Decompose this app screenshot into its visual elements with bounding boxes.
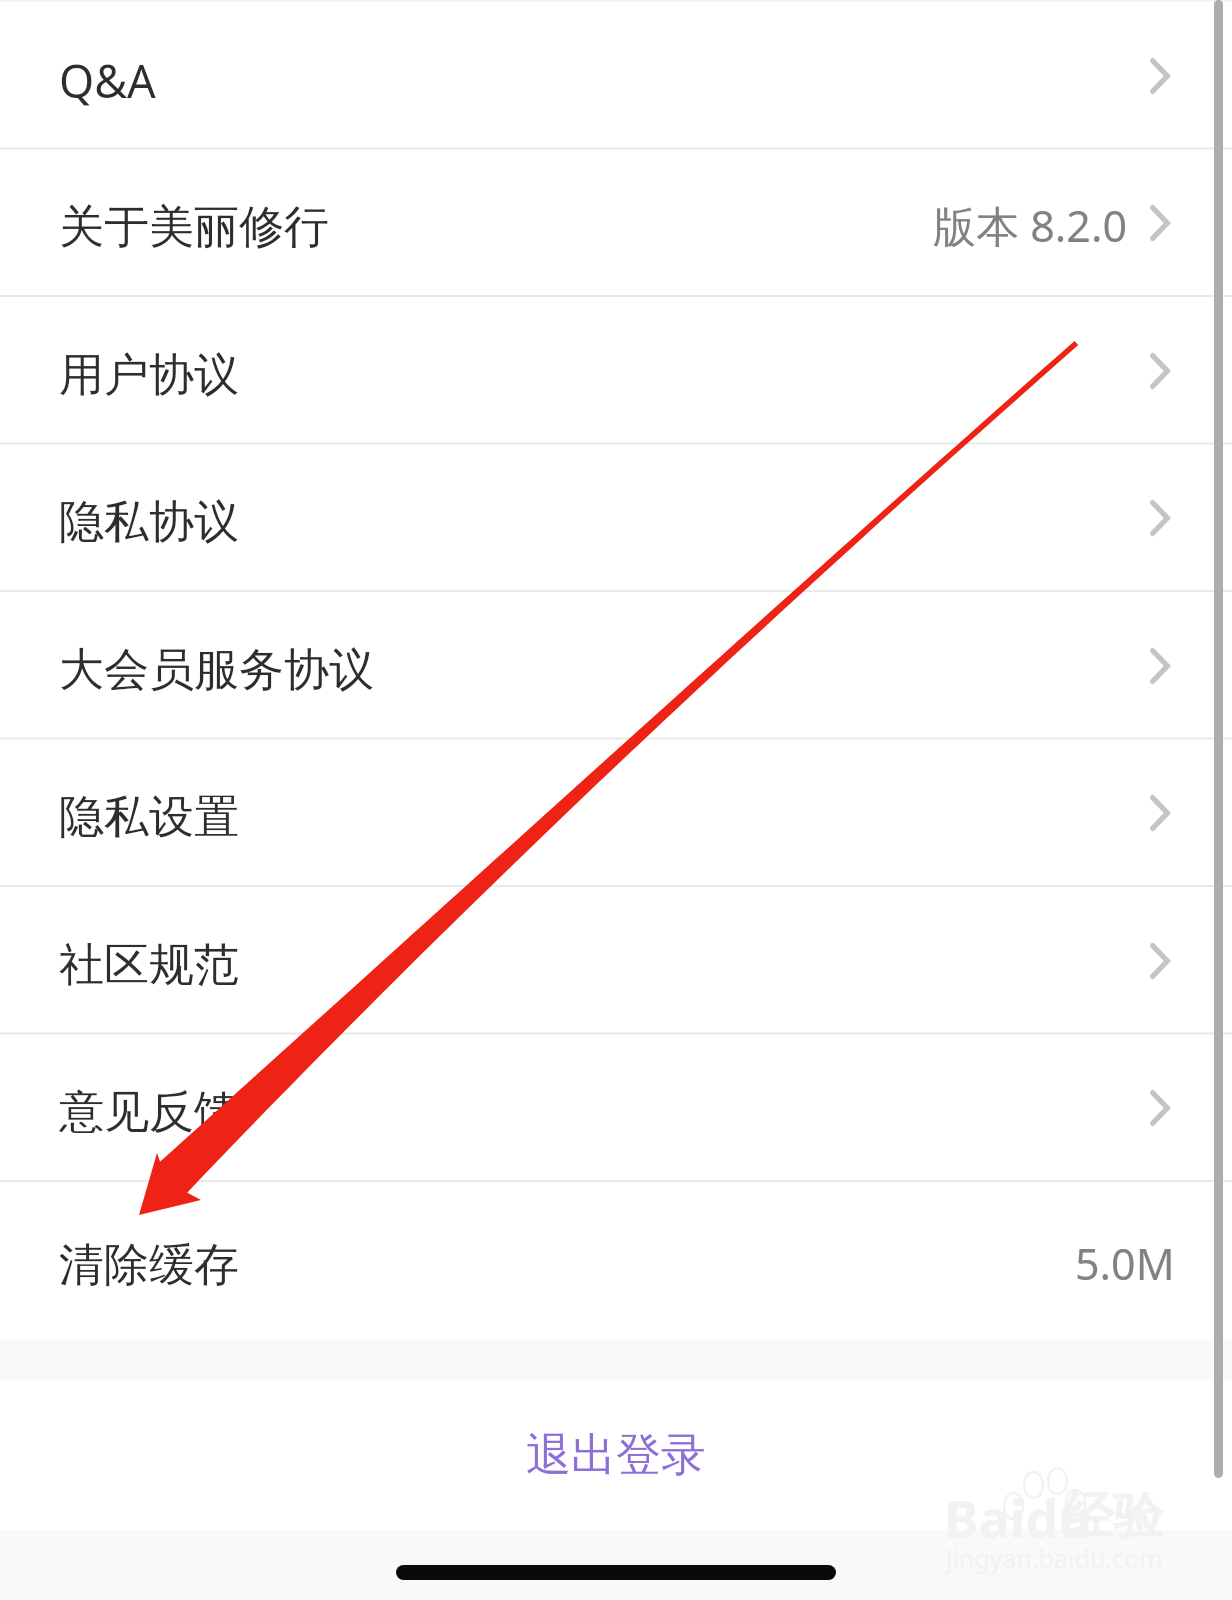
other: Open	[1150, 943, 1170, 979]
button[interactable]: 大会员服务协议	[0, 593, 1232, 739]
button[interactable]: Q&A	[0, 3, 1232, 149]
staticText: 用户协议	[59, 347, 239, 404]
button[interactable]: 社区规范	[0, 888, 1232, 1034]
staticText: Q&A	[59, 50, 156, 111]
other: Open	[1150, 648, 1170, 684]
button[interactable]: 隐私协议	[0, 445, 1232, 591]
staticText: 退出登录	[526, 1427, 706, 1484]
button[interactable]: 关于美丽修行	[0, 150, 1232, 296]
staticText: 隐私协议	[59, 494, 239, 551]
other: Open	[1150, 58, 1170, 94]
staticText: 清除缓存	[59, 1237, 239, 1294]
other: Open	[1150, 205, 1170, 241]
button[interactable]: 退出登录	[0, 1380, 1232, 1530]
button[interactable]: 隐私设置	[0, 740, 1232, 886]
staticText: 5.0M	[1075, 1234, 1175, 1293]
other: Open	[1150, 1090, 1170, 1126]
staticText: 社区规范	[59, 937, 239, 994]
other: Open	[1150, 353, 1170, 389]
other: Open	[1150, 500, 1170, 536]
staticText: 关于美丽修行	[59, 199, 329, 256]
staticText: 意见反馈	[59, 1084, 239, 1141]
other: Open	[1150, 795, 1170, 831]
staticText: 版本 8.2.0	[933, 196, 1128, 255]
button[interactable]: 意见反馈	[0, 1035, 1232, 1181]
button[interactable]: 用户协议	[0, 298, 1232, 444]
staticText: 隐私设置	[59, 789, 239, 846]
button[interactable]: 清除缓存	[0, 1183, 1232, 1340]
staticText: 大会员服务协议	[59, 642, 374, 699]
